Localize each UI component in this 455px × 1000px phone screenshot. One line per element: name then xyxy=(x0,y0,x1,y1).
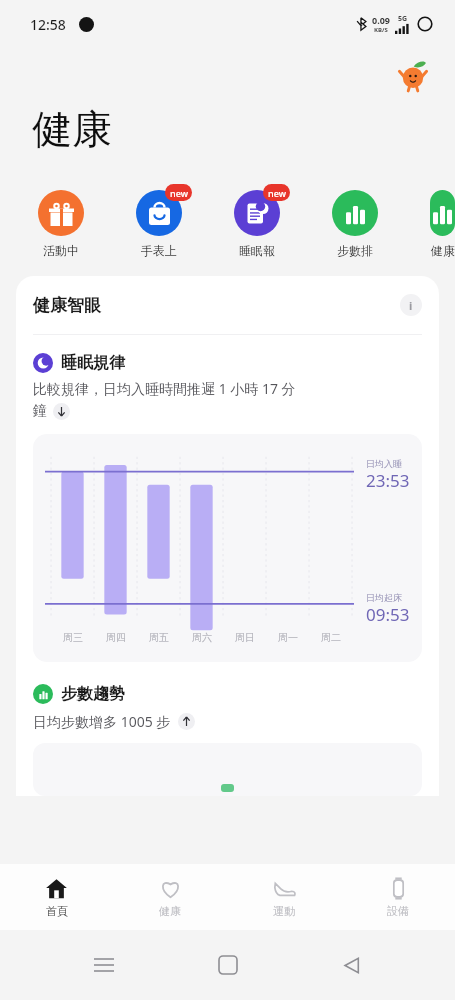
staticText: 0.09 xyxy=(372,14,390,26)
staticText: 周四 xyxy=(106,631,126,644)
button[interactable]: new xyxy=(136,190,182,258)
button[interactable]: 健康 xyxy=(113,864,227,930)
staticText: 手表上新 xyxy=(136,243,182,258)
staticText: 日均起床 xyxy=(366,592,402,603)
staticText: 日均入睡 xyxy=(366,458,402,469)
staticText: 步數排行榜 xyxy=(332,243,378,258)
staticText: 鐘 xyxy=(33,402,47,420)
staticText: 睡眠規律 xyxy=(61,353,125,373)
button[interactable]: 步數排行榜 xyxy=(332,190,378,258)
staticText: 周一 xyxy=(278,631,298,644)
button[interactable]: Profile xyxy=(393,56,433,96)
staticText: 周三 xyxy=(63,631,83,644)
button[interactable]: 活動中心 xyxy=(38,190,84,258)
staticText: 睡眠報告 xyxy=(234,243,280,258)
staticText: 周日 xyxy=(235,631,255,644)
staticText: 周五 xyxy=(149,631,169,644)
staticText: 步數趨勢 xyxy=(61,684,125,704)
button[interactable]: Info xyxy=(400,294,422,316)
staticText: 活動中心 xyxy=(38,243,84,258)
button[interactable]: 步數趨勢 xyxy=(33,684,125,704)
button[interactable]: Back xyxy=(331,945,371,985)
button[interactable]: Recents xyxy=(84,945,124,985)
staticText: 周六 xyxy=(192,631,212,644)
button[interactable]: new xyxy=(234,190,280,258)
staticText: 日均步數增多 1005 步 xyxy=(33,712,171,731)
staticText: 設備 xyxy=(387,904,409,918)
staticText: 健康 xyxy=(32,104,112,154)
button[interactable]: 健康 xyxy=(430,190,455,258)
staticText: KB/S xyxy=(374,26,388,34)
staticText: 健康智眼 xyxy=(33,295,101,316)
staticText: 12:58 xyxy=(30,15,66,34)
staticText: i xyxy=(409,298,413,313)
button[interactable]: Home xyxy=(208,945,248,985)
staticText: 健康 xyxy=(431,243,455,258)
staticText: 23:53 xyxy=(366,469,410,492)
button[interactable]: 首頁 xyxy=(0,864,113,930)
staticText: new xyxy=(170,187,188,199)
staticText: 周二 xyxy=(321,631,341,644)
staticText: new xyxy=(268,187,286,199)
staticText: 09:53 xyxy=(366,603,410,626)
staticText: 運動 xyxy=(273,904,295,918)
staticText: 健康 xyxy=(159,904,181,918)
button[interactable]: 設備 xyxy=(341,864,455,930)
staticText: 首頁 xyxy=(46,904,68,918)
button[interactable]: 睡眠規律 xyxy=(33,353,125,373)
button[interactable]: 運動 xyxy=(227,864,341,930)
staticText: 5G xyxy=(398,14,408,24)
staticText: 比較規律，日均入睡時間推遲 1 小時 17 分 xyxy=(33,379,296,398)
